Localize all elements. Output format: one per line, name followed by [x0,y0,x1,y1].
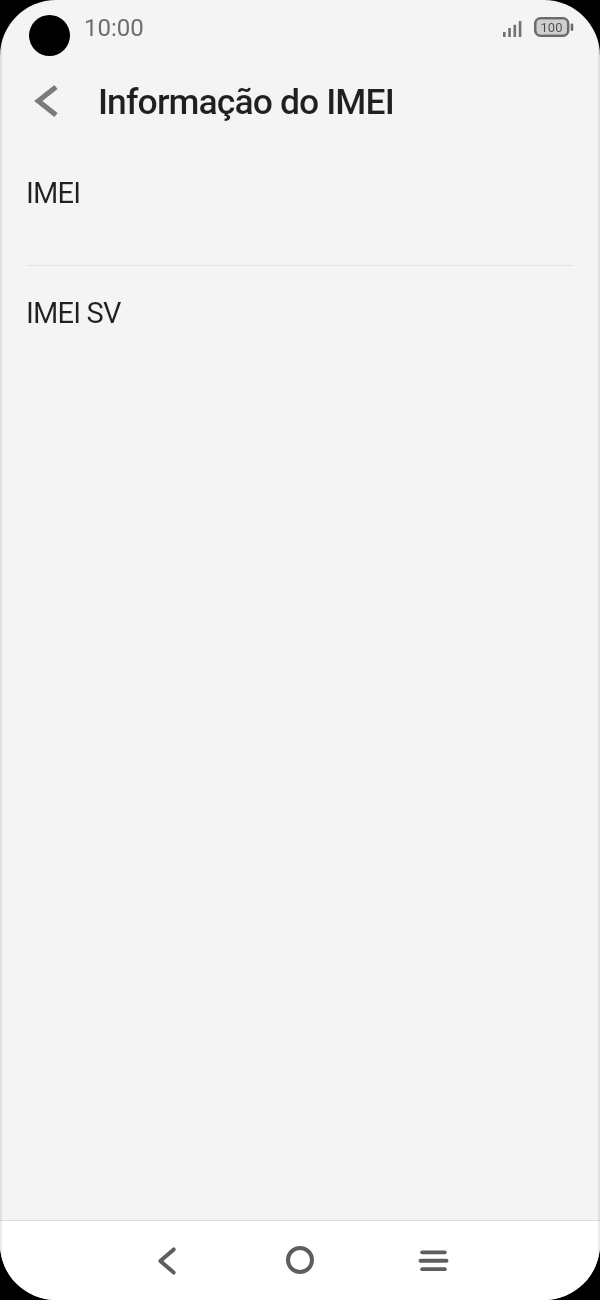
staticText: IMEI [26,176,81,210]
button[interactable]: Navigate up [14,69,78,133]
other: Battery 100 percent [534,17,574,37]
button[interactable]: Home [268,1228,332,1292]
button[interactable]: Back [135,1229,199,1293]
staticText: 100 [538,20,565,35]
button[interactable]: IMEI [0,136,600,249]
button[interactable]: Recent apps [401,1228,465,1292]
button[interactable]: IMEI SV [0,256,600,369]
other: Mobile signal [503,20,523,37]
staticText: 10:00 [84,14,144,42]
other: Front camera [29,15,70,56]
staticText: IMEI SV [26,296,121,330]
staticText: Informação do IMEI [98,81,394,123]
